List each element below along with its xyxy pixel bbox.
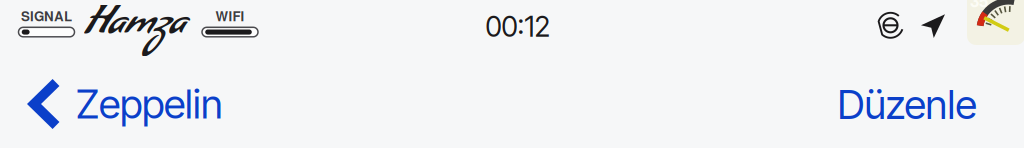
staticText: 35 [970, 0, 988, 13]
button[interactable]: Rotation lock [877, 12, 904, 39]
button[interactable]: Düzenle [837, 80, 976, 129]
staticText: Düzenle [837, 80, 976, 129]
staticText: Zeppelin [76, 80, 223, 128]
button[interactable]: Location [920, 13, 945, 38]
staticText: WIFI [215, 6, 244, 25]
staticText: 00:12 [485, 10, 550, 43]
staticText: SIGNAL [21, 6, 72, 25]
staticText: Hamza [84, 0, 186, 60]
button[interactable]: Zeppelin [29, 77, 223, 130]
